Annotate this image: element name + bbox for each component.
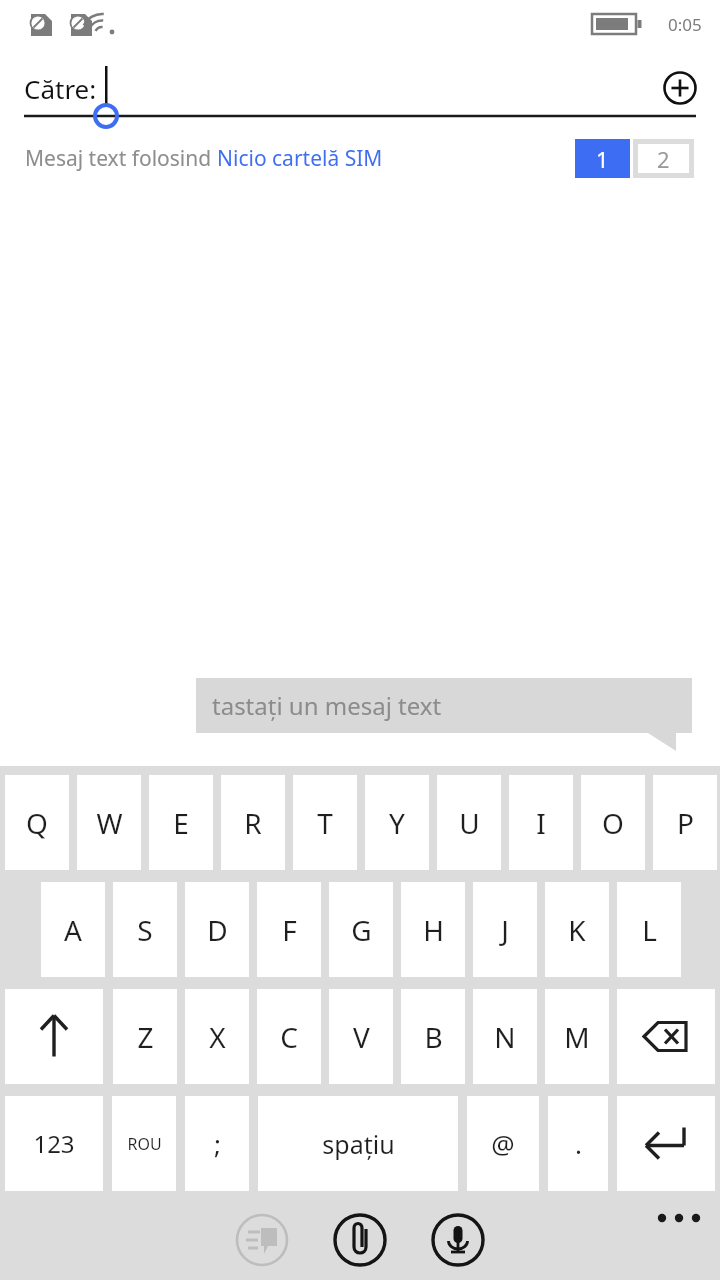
button[interactable]: U — [437, 775, 501, 870]
staticText: B — [424, 1018, 443, 1056]
button[interactable]: Send — [236, 1214, 288, 1266]
button[interactable]: N — [473, 989, 537, 1084]
button[interactable]: More options — [650, 1214, 720, 1266]
button[interactable]: ; — [185, 1096, 249, 1191]
button[interactable]: 1 — [575, 139, 630, 178]
button[interactable]: B — [401, 989, 465, 1084]
staticText: tastați un mesaj text — [212, 689, 442, 722]
staticText: Către: — [24, 71, 97, 106]
button[interactable]: G — [329, 882, 393, 977]
button[interactable]: K — [545, 882, 609, 977]
button[interactable]: W — [77, 775, 141, 870]
button[interactable]: S — [113, 882, 177, 977]
button[interactable]: 2 — [633, 139, 694, 178]
staticText: ; — [214, 1126, 221, 1161]
staticText: W — [96, 804, 123, 842]
button[interactable]: D — [185, 882, 249, 977]
button[interactable]: . — [548, 1096, 608, 1191]
staticText: N — [494, 1018, 516, 1056]
staticText: 1 — [596, 144, 609, 174]
button[interactable]: Backspace — [617, 989, 715, 1084]
button[interactable]: 123 — [5, 1096, 103, 1191]
button[interactable]: ROU — [112, 1096, 176, 1191]
staticText: S — [137, 911, 153, 949]
staticText: U — [459, 804, 480, 842]
staticText: E — [173, 804, 189, 842]
button[interactable]: Q — [5, 775, 69, 870]
staticText: H — [423, 911, 444, 949]
staticText: L — [642, 911, 657, 949]
staticText: Z — [137, 1018, 154, 1056]
staticText: M — [564, 1018, 590, 1056]
staticText: K — [568, 911, 586, 949]
button[interactable]: A — [41, 882, 105, 977]
button[interactable]: Către: — [0, 58, 720, 118]
button[interactable]: Attach — [334, 1214, 386, 1266]
button[interactable]: I — [509, 775, 573, 870]
staticText: Q — [26, 804, 48, 842]
button[interactable]: V — [329, 989, 393, 1084]
staticText: A — [64, 911, 82, 949]
button[interactable]: E — [149, 775, 213, 870]
button[interactable]: L — [617, 882, 681, 977]
button[interactable]: O — [581, 775, 645, 870]
button[interactable]: Z — [113, 989, 177, 1084]
staticText: ROU — [127, 1133, 162, 1155]
button[interactable]: tastați un mesaj text — [196, 678, 692, 733]
button[interactable]: @ — [467, 1096, 539, 1191]
staticText: O — [602, 804, 624, 842]
staticText: D — [207, 911, 228, 949]
staticText: P — [677, 804, 694, 842]
button[interactable]: C — [257, 989, 321, 1084]
staticText: J — [501, 911, 509, 949]
button[interactable]: H — [401, 882, 465, 977]
button[interactable]: Add contact — [656, 64, 704, 112]
staticText: spațiu — [322, 1127, 395, 1161]
staticText: Mesaj text folosind — [25, 144, 217, 173]
button[interactable]: spațiu — [258, 1096, 458, 1191]
staticText: 2 — [657, 144, 670, 174]
staticText: I — [536, 804, 546, 842]
staticText: G — [351, 911, 372, 949]
staticText: X — [209, 1018, 226, 1056]
staticText: 0:05 — [668, 13, 702, 36]
button[interactable]: M — [545, 989, 609, 1084]
staticText: . — [575, 1126, 582, 1161]
button[interactable]: Shift — [5, 989, 103, 1084]
button[interactable]: X — [185, 989, 249, 1084]
button[interactable]: P — [653, 775, 717, 870]
button[interactable]: T — [293, 775, 357, 870]
button[interactable]: J — [473, 882, 537, 977]
staticText: 123 — [33, 1127, 75, 1160]
staticText: R — [244, 804, 262, 842]
staticText: @ — [491, 1126, 515, 1161]
button[interactable]: Voice message — [432, 1214, 484, 1266]
button[interactable]: Mesaj text folosind — [25, 144, 383, 173]
staticText: V — [353, 1018, 370, 1056]
staticText: C — [280, 1018, 298, 1056]
button[interactable]: Y — [365, 775, 429, 870]
staticText: Y — [389, 804, 405, 842]
button[interactable]: R — [221, 775, 285, 870]
staticText: F — [282, 911, 297, 949]
staticText: T — [317, 804, 333, 842]
button[interactable]: F — [257, 882, 321, 977]
staticText: Nicio cartelă SIM — [217, 144, 383, 173]
button[interactable]: Enter — [617, 1096, 715, 1191]
